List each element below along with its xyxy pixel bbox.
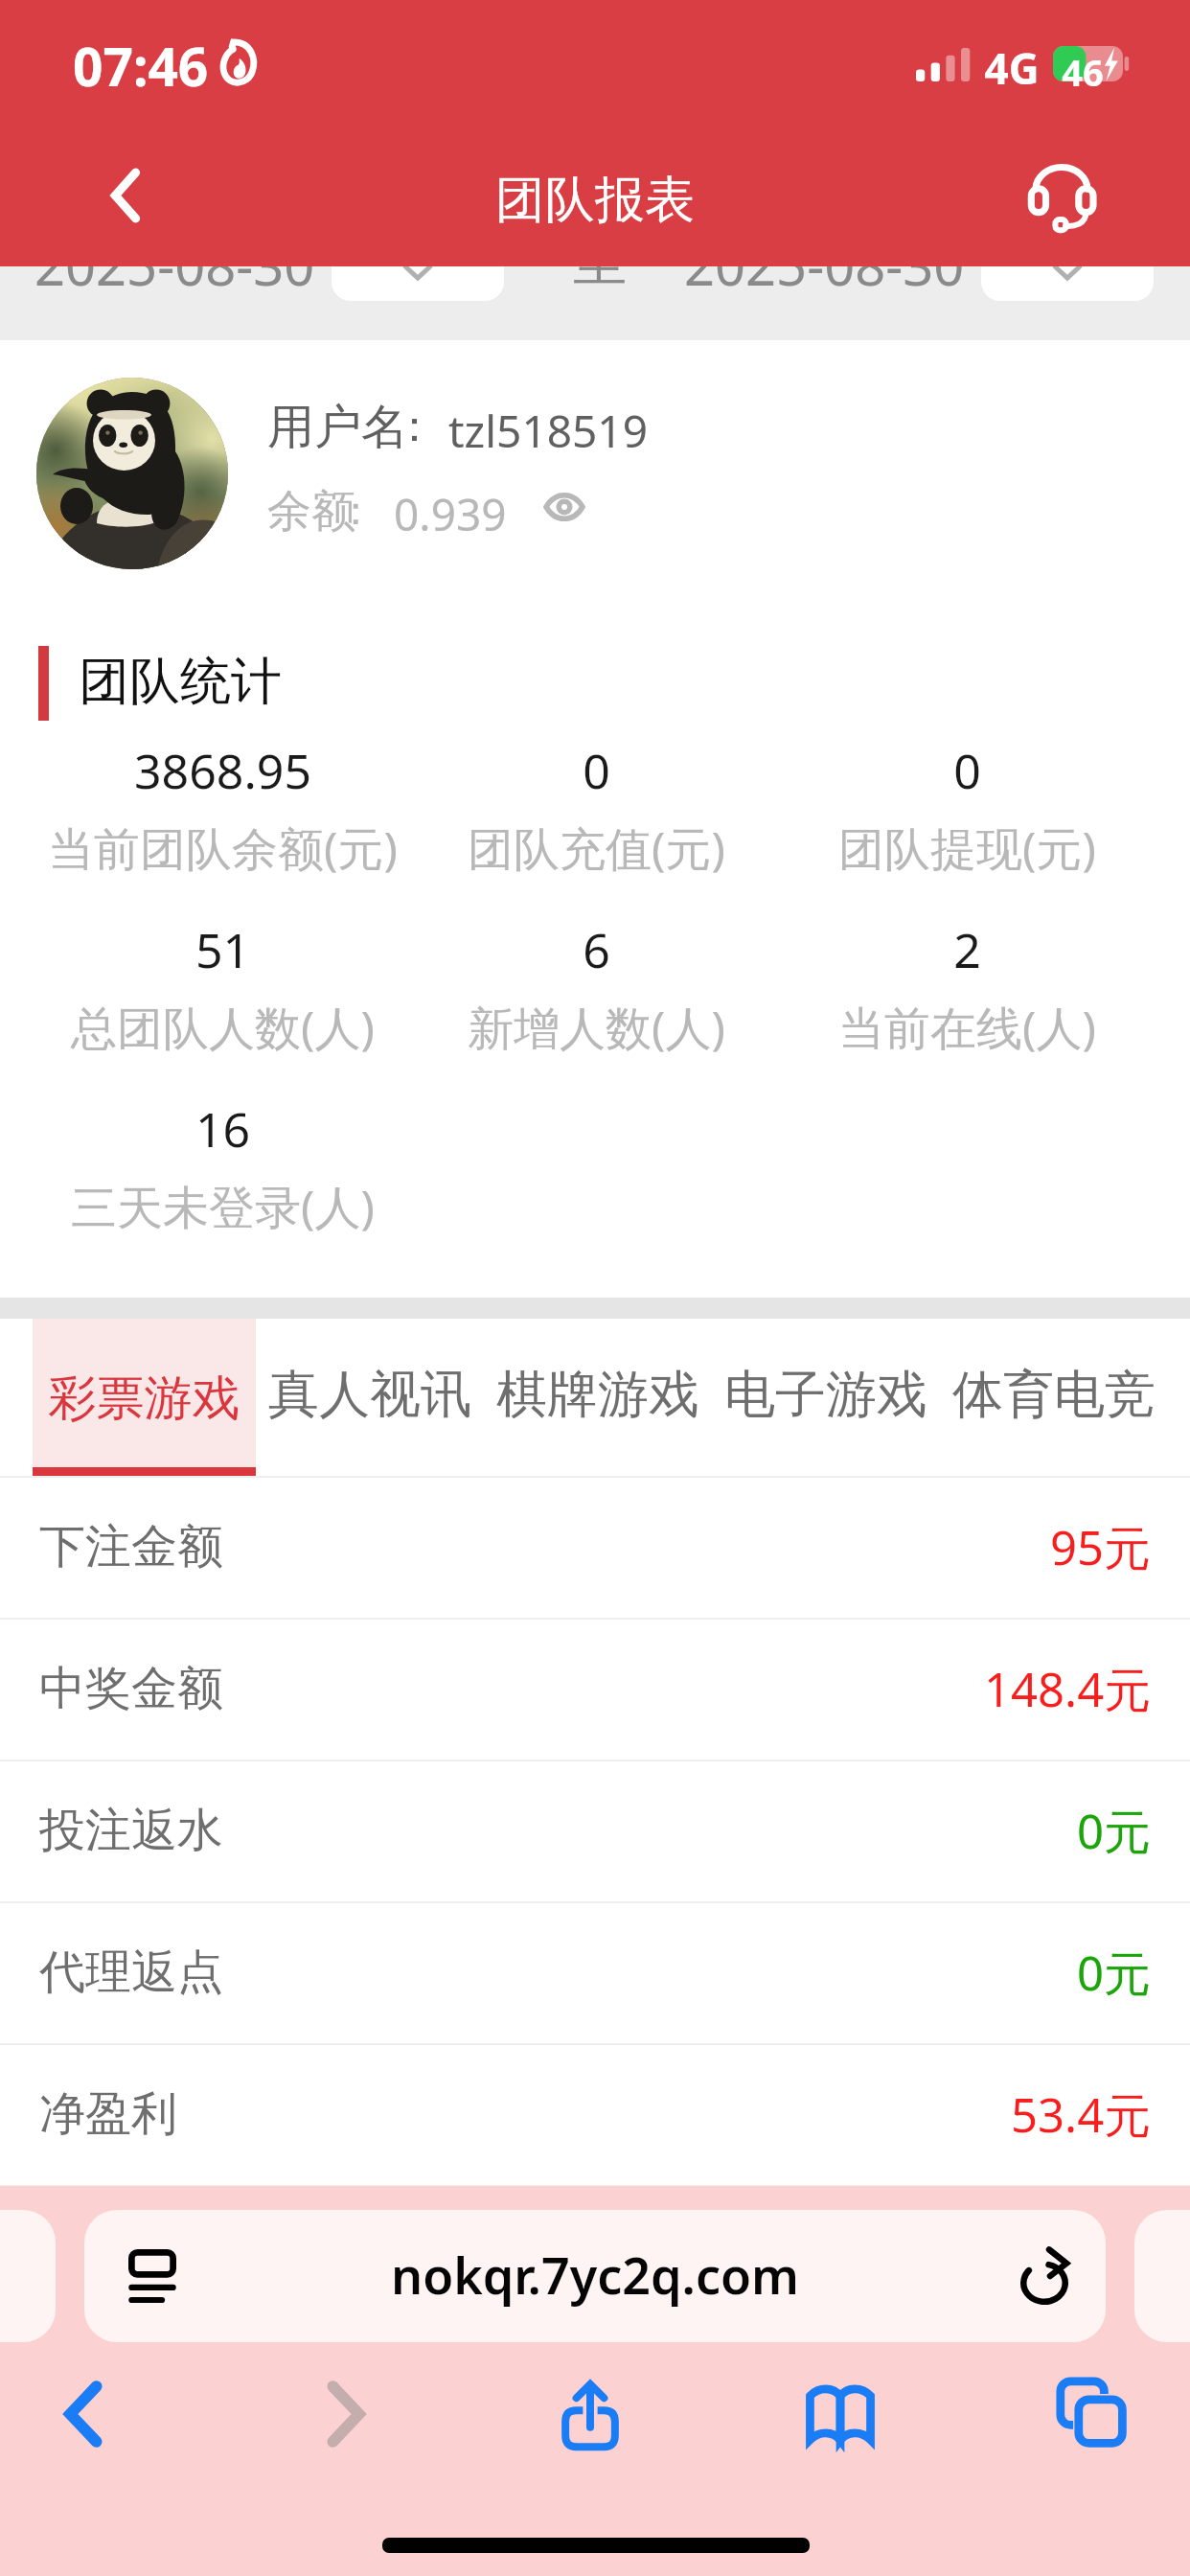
staticText: 中奖金额 <box>39 1660 223 1717</box>
button[interactable]: 棋牌游戏 <box>484 1319 712 1476</box>
button[interactable]: Toggle balance visibility <box>525 477 604 537</box>
staticText: 体育电竞 <box>940 1363 1168 1427</box>
staticText: 团队报表 <box>0 169 1190 232</box>
button[interactable]: Start date <box>332 228 504 301</box>
button[interactable]: 净盈利 <box>0 2043 1190 2185</box>
staticText: 投注返水 <box>39 1802 223 1859</box>
staticText: 团队统计 <box>79 650 282 714</box>
staticText: 团队充值(元) <box>413 816 780 880</box>
staticText: 2025-08-30 <box>684 228 965 301</box>
staticText: 95元 <box>1050 1515 1152 1579</box>
button[interactable]: Reload <box>998 2237 1090 2315</box>
button[interactable]: Customer service <box>1005 142 1118 247</box>
button[interactable]: Page settings <box>84 2210 1106 2342</box>
staticText: 用户名 <box>267 398 408 457</box>
staticText: 16 <box>39 1096 406 1161</box>
staticText: 0元 <box>1077 1799 1152 1863</box>
staticText: 新增人数(人) <box>413 996 780 1059</box>
button[interactable]: User avatar <box>36 378 228 569</box>
staticText: 当前在线(人) <box>784 996 1151 1059</box>
button[interactable]: 电子游戏 <box>712 1319 940 1476</box>
staticText: 51 <box>39 917 406 982</box>
staticText: 棋牌游戏 <box>484 1363 712 1427</box>
staticText: 团队提现(元) <box>784 816 1151 880</box>
staticText: 真人视讯 <box>256 1363 484 1427</box>
staticText: 2 <box>784 917 1151 982</box>
button[interactable]: Page settings <box>105 2237 199 2315</box>
staticText: 6 <box>413 917 780 982</box>
staticText: 3868.95 <box>39 738 406 803</box>
staticText: 三天未登录(人) <box>39 1175 406 1238</box>
button[interactable]: Bookmarks <box>779 2355 902 2473</box>
button[interactable]: Tabs <box>1032 2355 1155 2473</box>
button[interactable]: 体育电竞 <box>940 1319 1168 1476</box>
button[interactable]: 投注返水 <box>0 1759 1190 1901</box>
staticText: 净盈利 <box>39 2085 177 2143</box>
staticText: tzl518519 <box>448 401 648 461</box>
staticText: 46 <box>1055 47 1110 97</box>
button[interactable]: Share <box>529 2355 652 2473</box>
button[interactable]: 中奖金额 <box>0 1618 1190 1759</box>
staticText: ： <box>393 400 436 454</box>
staticText: ： <box>335 486 376 537</box>
staticText: 148.4元 <box>984 1657 1152 1721</box>
button[interactable]: 真人视讯 <box>256 1319 484 1476</box>
button[interactable]: 代理返点 <box>0 1901 1190 2043</box>
staticText: 0元 <box>1077 1941 1152 2005</box>
button[interactable]: Forward <box>282 2355 404 2473</box>
staticText: 总团队人数(人) <box>39 996 406 1059</box>
button[interactable]: 彩票游戏 <box>33 1319 256 1476</box>
button[interactable]: Back <box>69 143 182 248</box>
staticText: 0 <box>784 738 1151 803</box>
staticText: 下注金额 <box>39 1518 223 1575</box>
button[interactable]: 下注金额 <box>0 1476 1190 1618</box>
staticText: 2025-08-30 <box>34 228 315 301</box>
staticText: 代理返点 <box>39 1943 223 2001</box>
staticText: 当前团队余额(元) <box>39 816 406 880</box>
staticText: nokqr.7yc2q.com <box>84 2241 1106 2309</box>
staticText: 53.4元 <box>1011 2082 1152 2147</box>
button[interactable]: Back <box>25 2355 148 2473</box>
staticText: 07:46 <box>73 30 209 102</box>
staticText: 0 <box>413 738 780 803</box>
staticText: 余额 <box>267 484 355 540</box>
staticText: 至 <box>573 228 627 296</box>
staticText: 4G <box>984 39 1040 97</box>
staticText: 电子游戏 <box>712 1363 940 1427</box>
button[interactable]: End date <box>981 228 1154 301</box>
staticText: 0.939 <box>394 484 507 544</box>
staticText: 彩票游戏 <box>33 1368 256 1429</box>
